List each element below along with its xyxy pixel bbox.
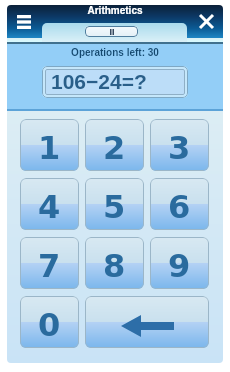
button[interactable]: 9: [150, 237, 209, 289]
button[interactable]: 5: [85, 178, 144, 230]
button[interactable]: 4: [20, 178, 79, 230]
staticText: 9: [168, 247, 191, 284]
staticText: Arithmetics: [7, 5, 223, 16]
button[interactable]: 1: [20, 119, 79, 171]
button[interactable]: Close: [194, 9, 218, 33]
button[interactable]: 7: [20, 237, 79, 289]
button[interactable]: 3: [150, 119, 209, 171]
staticText: 6: [168, 188, 191, 225]
staticText: 5: [103, 188, 126, 225]
button[interactable]: 8: [85, 237, 144, 289]
button[interactable]: 2: [85, 119, 144, 171]
staticText: 8: [103, 247, 126, 284]
staticText: 106−24=?: [51, 70, 147, 93]
staticText: 4: [38, 188, 61, 225]
button[interactable]: 0: [20, 296, 79, 348]
staticText: 3: [168, 129, 191, 166]
staticText: 0: [38, 306, 61, 343]
button[interactable]: Menu: [12, 10, 36, 34]
button[interactable]: 6: [150, 178, 209, 230]
staticText: Operations left: 30: [7, 47, 223, 58]
button[interactable]: Pause: [85, 26, 138, 37]
staticText: 2: [103, 129, 126, 166]
button[interactable]: Backspace: [85, 296, 209, 348]
staticText: 1: [38, 129, 61, 166]
button[interactable]: 106−24=?: [42, 66, 188, 98]
staticText: 7: [38, 247, 61, 284]
